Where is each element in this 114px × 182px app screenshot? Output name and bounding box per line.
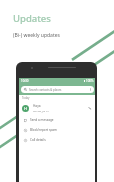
staticText: Send a message bbox=[30, 118, 54, 122]
staticText: 100% bbox=[86, 79, 94, 83]
staticText: Block/report spam bbox=[30, 128, 57, 132]
button[interactable]: Send a message bbox=[19, 115, 95, 125]
button[interactable]: H bbox=[19, 102, 95, 114]
staticText: Call details bbox=[30, 138, 46, 142]
button[interactable]: Call bbox=[88, 106, 92, 110]
staticText: Haya bbox=[33, 104, 41, 108]
button[interactable]: Search contacts & places bbox=[21, 86, 94, 93]
staticText: 10:30 bbox=[21, 79, 29, 83]
staticText: 30 Nov, Jul 17 bbox=[33, 109, 49, 112]
staticText: Search contacts & places bbox=[29, 88, 62, 92]
staticText: Updates bbox=[13, 12, 51, 25]
staticText: (Bi-) weekly updates bbox=[13, 32, 60, 39]
staticText: H bbox=[24, 106, 28, 112]
button[interactable]: Call details bbox=[19, 135, 95, 145]
staticText: Today bbox=[22, 96, 30, 100]
button[interactable]: Block/report spam bbox=[19, 125, 95, 135]
